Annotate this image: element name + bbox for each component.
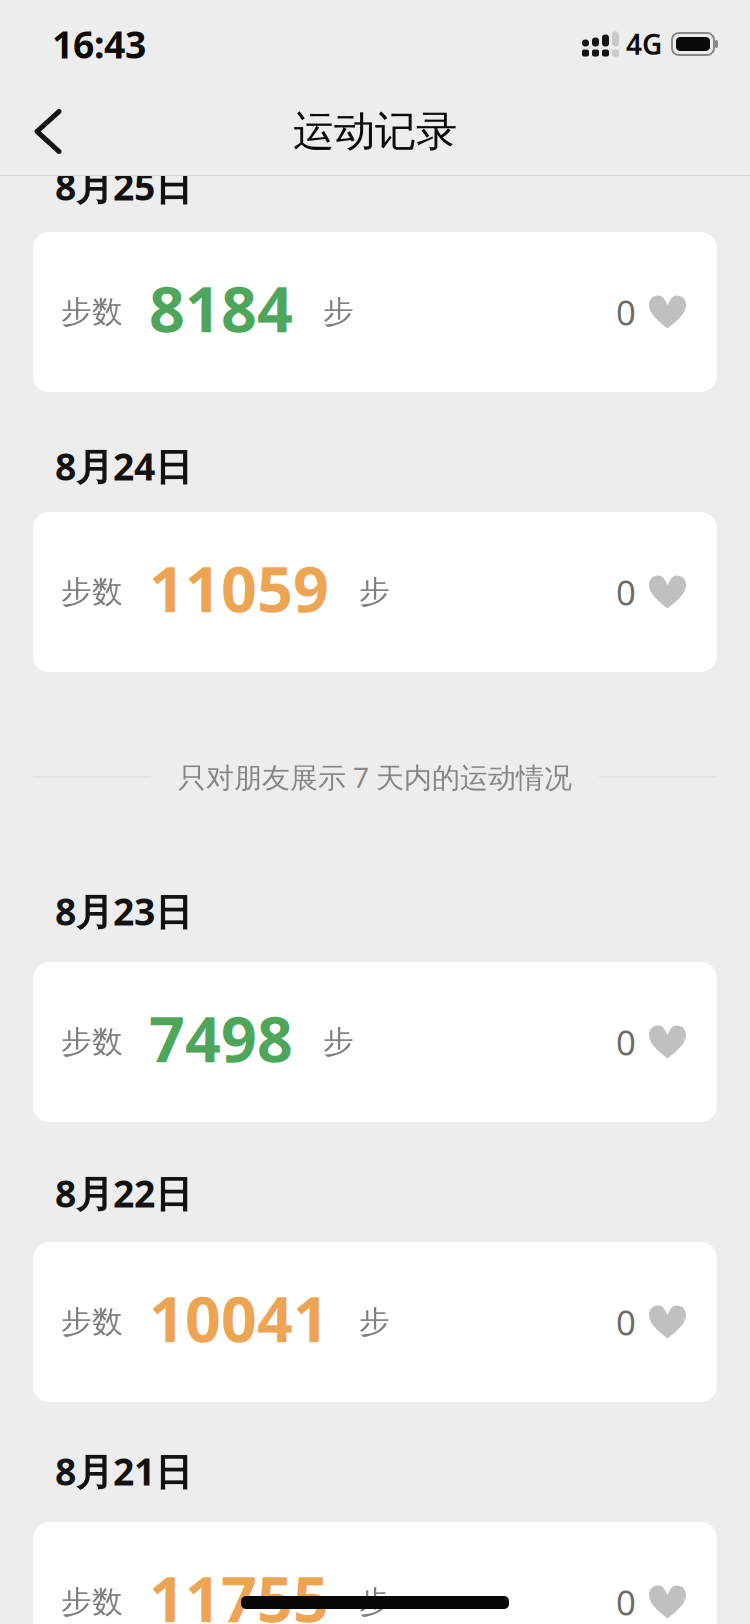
staticText: 8月24日 bbox=[55, 441, 192, 491]
button[interactable]: 步数 bbox=[33, 1242, 717, 1402]
staticText: 只对朋友展示 7 天内的运动情况 bbox=[178, 758, 572, 796]
staticText: 0 bbox=[616, 1579, 636, 1624]
staticText: 11755 bbox=[149, 1556, 329, 1624]
staticText: 步 bbox=[359, 573, 390, 611]
button[interactable]: 返回 bbox=[0, 88, 79, 175]
staticText: 8月25日 bbox=[55, 161, 192, 211]
staticText: 0 bbox=[616, 289, 636, 335]
staticText: 16:43 bbox=[52, 19, 146, 69]
staticText: 8月22日 bbox=[55, 1168, 192, 1218]
staticText: 0 bbox=[616, 1299, 636, 1345]
staticText: 0 bbox=[616, 569, 636, 615]
staticText: 步 bbox=[359, 1303, 390, 1341]
staticText: 8月23日 bbox=[55, 886, 192, 936]
staticText: 步 bbox=[323, 293, 354, 331]
staticText: 步数 bbox=[61, 1583, 123, 1621]
staticText: 步 bbox=[359, 1583, 390, 1621]
staticText: 4G bbox=[626, 25, 662, 63]
staticText: 8月21日 bbox=[55, 1446, 192, 1496]
staticText: 步 bbox=[323, 1023, 354, 1061]
staticText: 步数 bbox=[61, 1023, 123, 1061]
staticText: 运动记录 bbox=[293, 106, 457, 157]
staticText: 0 bbox=[616, 1019, 636, 1065]
staticText: 步数 bbox=[61, 293, 123, 331]
button[interactable]: 步数 bbox=[33, 232, 717, 392]
button[interactable]: 步数 bbox=[33, 1522, 717, 1624]
staticText: 10041 bbox=[149, 1276, 329, 1360]
button[interactable]: 步数 bbox=[33, 962, 717, 1122]
staticText: 步数 bbox=[61, 1303, 123, 1341]
staticText: 8184 bbox=[149, 266, 293, 350]
button[interactable]: 步数 bbox=[33, 512, 717, 672]
staticText: 步数 bbox=[61, 573, 123, 611]
staticText: 7498 bbox=[149, 996, 293, 1080]
staticText: 11059 bbox=[149, 546, 329, 630]
